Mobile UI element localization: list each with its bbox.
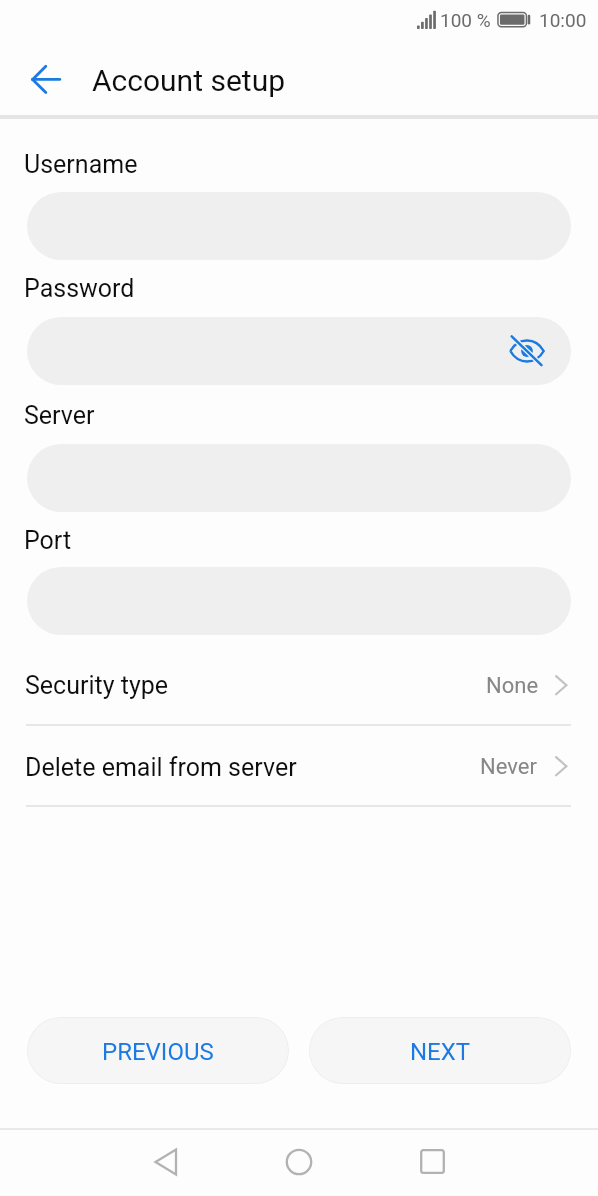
staticText: Delete email from server	[25, 752, 297, 782]
button[interactable]: Show password	[27, 317, 571, 385]
staticText: Username	[24, 149, 138, 179]
button[interactable]: Delete email from server	[0, 726, 598, 807]
staticText: NEXT	[410, 1037, 471, 1066]
button[interactable]: Home	[259, 1128, 339, 1195]
button[interactable]: NEXT	[309, 1017, 571, 1084]
staticText: Account setup	[92, 62, 286, 98]
staticText: 100 %	[440, 9, 491, 32]
staticText: Password	[24, 273, 135, 303]
button[interactable]: Security type	[0, 645, 598, 726]
staticText: Security type	[25, 670, 169, 700]
staticText: Port	[24, 525, 72, 555]
staticText: None	[486, 672, 539, 698]
button[interactable]: Recent apps	[392, 1128, 472, 1195]
button[interactable]: PREVIOUS	[27, 1017, 289, 1084]
staticText: PREVIOUS	[102, 1037, 214, 1066]
button[interactable]: Back	[126, 1128, 206, 1195]
staticText: Server	[24, 400, 95, 430]
button[interactable]: Back	[13, 44, 83, 114]
staticText: 10:00	[539, 9, 587, 32]
staticText: Never	[480, 753, 537, 779]
button[interactable]: Show password	[507, 331, 547, 371]
